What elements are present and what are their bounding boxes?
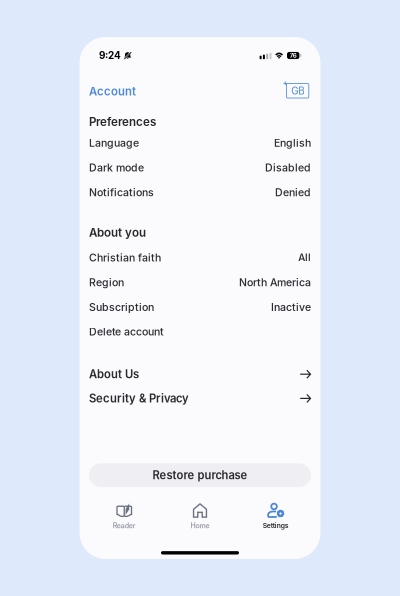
staticText: 9:24 xyxy=(99,50,121,61)
button[interactable]: Security & Privacy xyxy=(79,386,320,410)
staticText: All xyxy=(298,251,311,264)
staticText: Notifications xyxy=(89,186,154,198)
button[interactable]: Christian faith xyxy=(79,245,320,270)
staticText: Language xyxy=(89,137,139,149)
button[interactable]: Subscription xyxy=(79,295,320,319)
button[interactable]: Change region xyxy=(286,83,311,100)
staticText: 76 xyxy=(290,52,297,59)
button[interactable]: Home xyxy=(169,501,231,531)
staticText: Delete account xyxy=(89,326,164,338)
button[interactable]: Notifications xyxy=(79,180,320,205)
button[interactable]: Region xyxy=(79,270,320,295)
button[interactable]: Language xyxy=(79,131,320,155)
staticText: North America xyxy=(239,276,311,289)
staticText: Dark mode xyxy=(89,161,144,174)
staticText: Inactive xyxy=(271,301,311,313)
staticText: Restore purchase xyxy=(152,469,247,482)
staticText: Region xyxy=(89,276,124,289)
staticText: Disabled xyxy=(265,161,311,174)
button[interactable]: Settings xyxy=(245,501,307,531)
staticText: About you xyxy=(89,226,146,239)
staticText: English xyxy=(274,137,311,149)
staticText: Christian faith xyxy=(89,251,161,264)
staticText: Home xyxy=(190,521,209,530)
button[interactable]: Account xyxy=(89,83,136,100)
button[interactable]: About Us xyxy=(79,362,320,386)
staticText: Preferences xyxy=(89,115,156,129)
staticText: Account xyxy=(89,85,136,98)
button[interactable]: Delete account xyxy=(79,319,320,344)
staticText: Settings xyxy=(263,522,289,530)
button[interactable]: Dark mode xyxy=(79,155,320,180)
staticText: GB xyxy=(291,85,304,97)
staticText: Reader xyxy=(113,521,136,530)
button[interactable]: Reader xyxy=(93,501,155,531)
staticText: Subscription xyxy=(89,301,154,313)
staticText: Denied xyxy=(275,186,311,198)
staticText: About Us xyxy=(89,368,139,381)
staticText: Security & Privacy xyxy=(89,392,189,405)
button[interactable]: Restore purchase xyxy=(89,463,311,487)
